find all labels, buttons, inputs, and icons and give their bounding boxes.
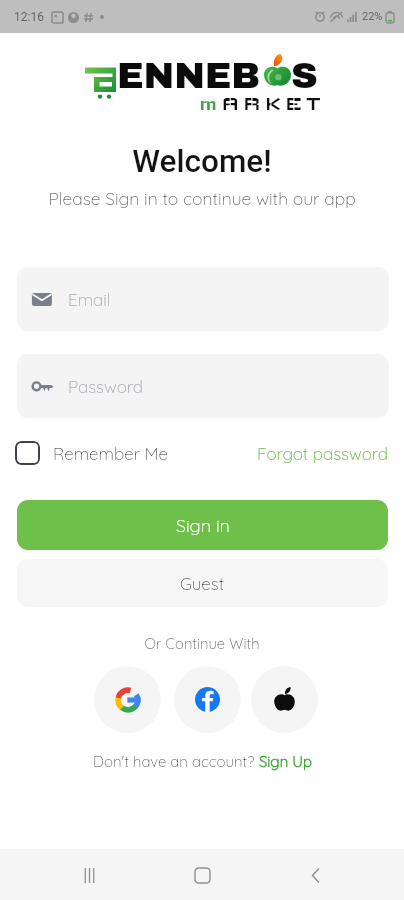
- button[interactable]: Password: [17, 354, 389, 418]
- staticText: Don't have an account?: [93, 752, 259, 771]
- staticText: Email: [68, 289, 111, 310]
- staticText: Sign in: [176, 514, 230, 537]
- staticText: Or Continue With: [0, 634, 404, 653]
- button[interactable]: Guest: [17, 559, 388, 607]
- button[interactable]: Back: [291, 851, 339, 899]
- staticText: 12:16: [14, 10, 44, 24]
- button[interactable]: Sign Up: [259, 752, 312, 771]
- button[interactable]: Sign in: [17, 500, 388, 550]
- staticText: 22%: [362, 10, 383, 23]
- button[interactable]: Email: [17, 267, 389, 331]
- staticText: S: [291, 56, 318, 96]
- staticText: Welcome!: [0, 143, 404, 180]
- staticText: m: [199, 94, 222, 114]
- staticText: Password: [68, 376, 143, 397]
- staticText: ENNEB: [117, 56, 260, 96]
- button[interactable]: Sign in with Apple: [251, 666, 318, 733]
- button[interactable]: Home: [178, 851, 226, 899]
- staticText: Guest: [180, 573, 225, 594]
- button[interactable]: Remember Me: [15, 441, 169, 465]
- button[interactable]: Sign in with Google: [94, 666, 161, 733]
- button[interactable]: Recents: [65, 851, 113, 899]
- staticText: Please Sign in to continue with our app: [0, 187, 404, 209]
- button[interactable]: Sign in with Facebook: [174, 666, 241, 733]
- button[interactable]: Forgot password: [257, 443, 388, 464]
- staticText: ARKET: [222, 94, 326, 114]
- staticText: Remember Me: [53, 443, 169, 464]
